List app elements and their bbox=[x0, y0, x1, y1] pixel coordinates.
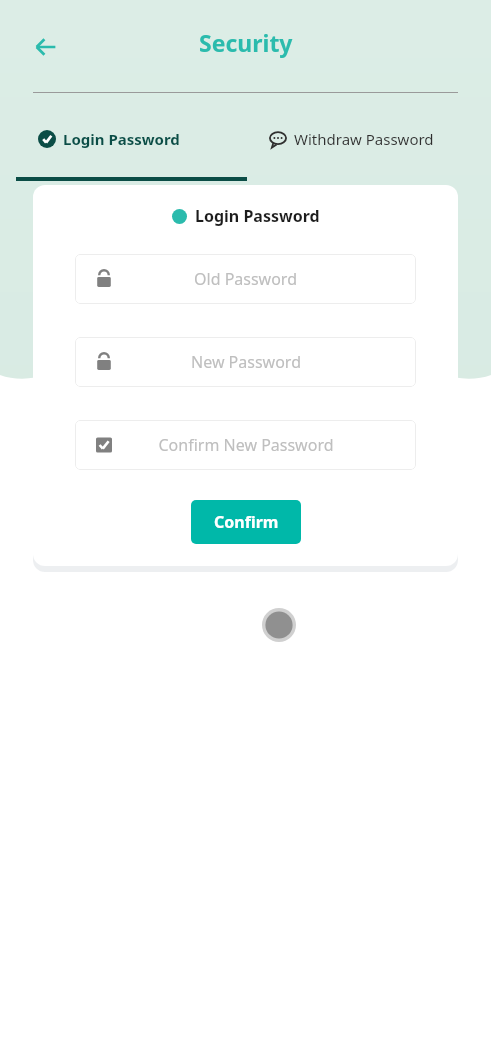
staticText: Old Password bbox=[194, 268, 297, 290]
staticText: Security bbox=[199, 27, 293, 58]
button[interactable]: Withdraw Password bbox=[247, 93, 491, 185]
button[interactable]: Back bbox=[22, 23, 70, 71]
staticText: Login Password bbox=[195, 205, 320, 227]
staticText: Confirm New Password bbox=[158, 434, 334, 456]
staticText: Login Password bbox=[63, 129, 180, 149]
button[interactable]: Confirm New Password bbox=[75, 420, 416, 470]
button[interactable]: New Password bbox=[75, 337, 416, 387]
staticText: Confirm bbox=[214, 511, 279, 533]
button[interactable]: Confirm bbox=[191, 500, 301, 544]
staticText: Withdraw Password bbox=[294, 129, 434, 149]
button[interactable]: Old Password bbox=[75, 254, 416, 304]
staticText: New Password bbox=[191, 351, 301, 373]
button[interactable]: Login Password bbox=[0, 93, 247, 185]
